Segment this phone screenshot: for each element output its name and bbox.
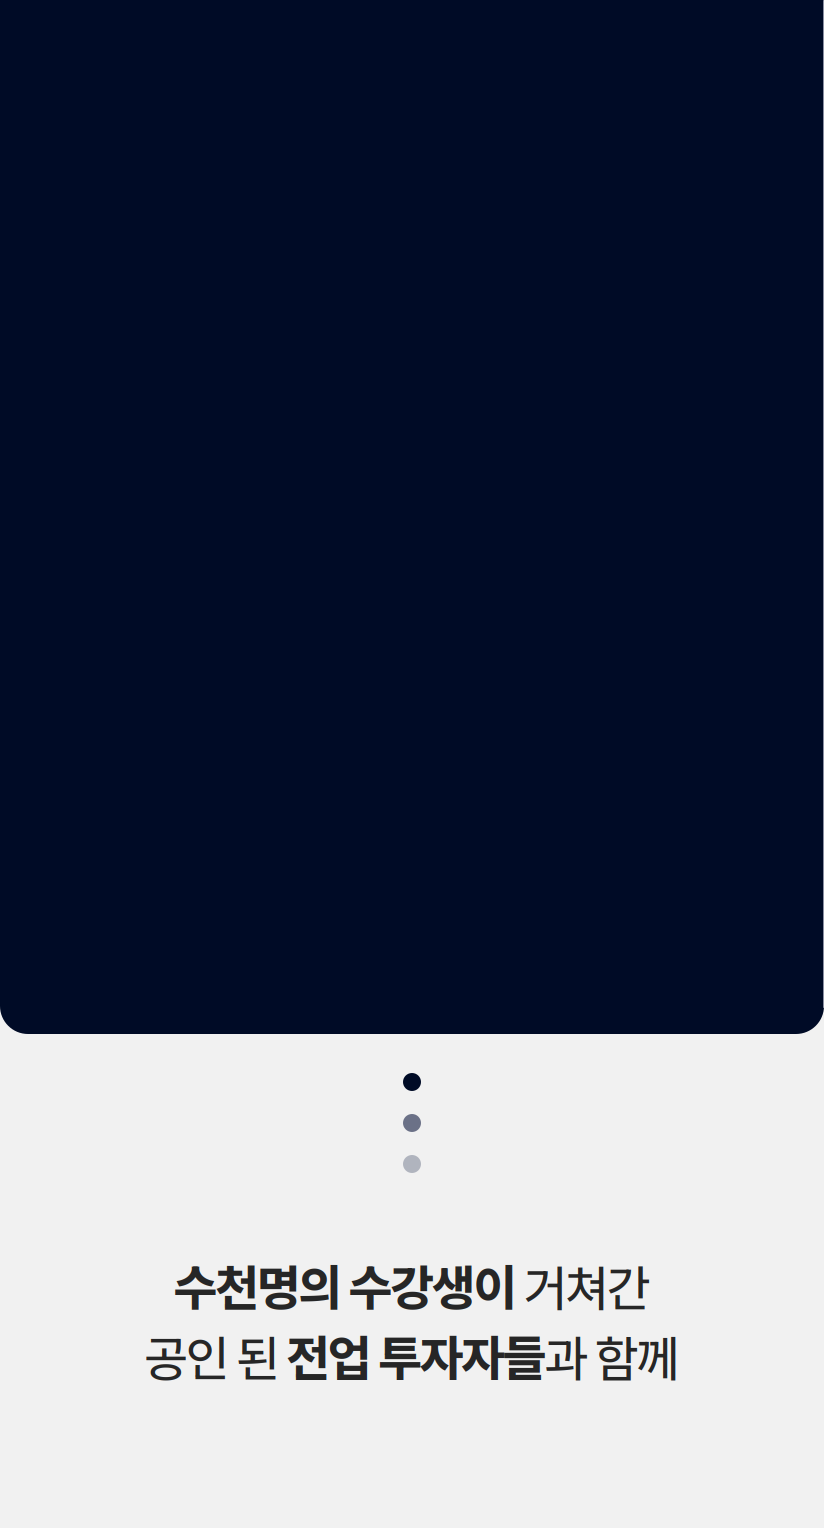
staticText: 수천명의 수강생이 거쳐간 (173, 1251, 651, 1319)
button[interactable]: Step 1, current (403, 1073, 421, 1091)
button[interactable]: Step 3 (403, 1155, 421, 1173)
staticText: 공인 된 전업 투자자들과 함께 (144, 1321, 680, 1390)
button[interactable]: Step 2 (403, 1114, 421, 1132)
